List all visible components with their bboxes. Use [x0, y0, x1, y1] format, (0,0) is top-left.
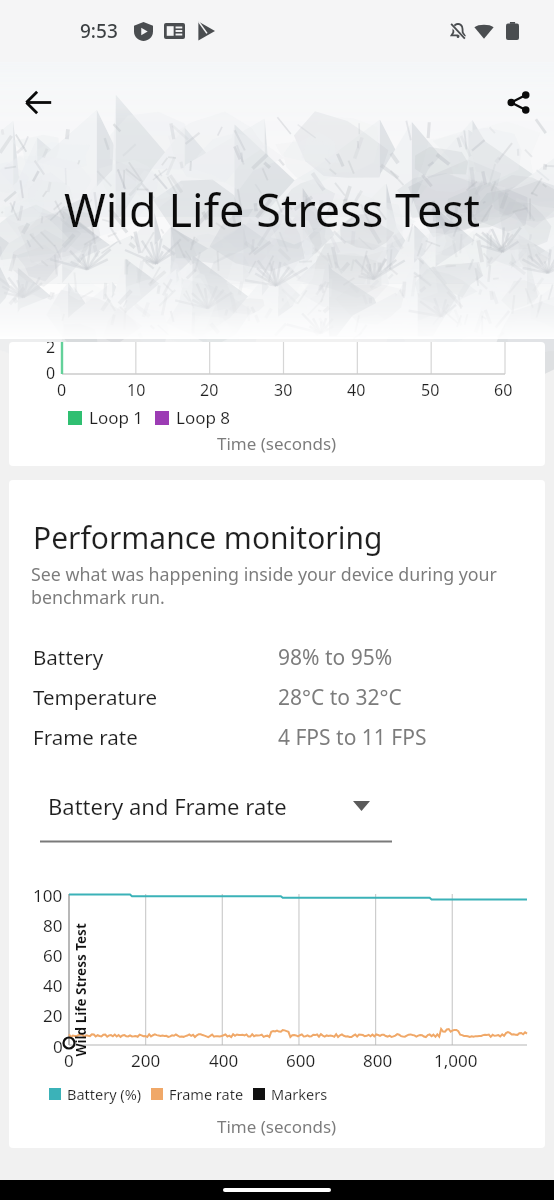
- button[interactable]: Share: [494, 78, 542, 126]
- staticText: Markers: [271, 1084, 328, 1104]
- staticText: 20: [43, 1004, 63, 1027]
- staticText: 2: [46, 342, 56, 358]
- staticText: 200: [131, 1049, 161, 1072]
- staticText: 20: [200, 379, 219, 401]
- staticText: 50: [421, 379, 440, 401]
- staticText: 0: [57, 379, 67, 401]
- staticText: 0: [64, 1049, 74, 1072]
- staticText: Time (seconds): [217, 1115, 337, 1138]
- staticText: Battery and Frame rate: [48, 791, 287, 821]
- staticText: Wild Life Stress Test: [71, 922, 89, 1056]
- staticText: 60: [43, 944, 63, 967]
- staticText: 10: [127, 379, 146, 401]
- staticText: Battery (%): [67, 1084, 142, 1104]
- staticText: 800: [363, 1049, 393, 1072]
- staticText: 28°C to 32°C: [278, 683, 402, 712]
- staticText: Temperature: [33, 683, 158, 711]
- button[interactable]: Back: [14, 78, 62, 126]
- staticText: Frame rate: [169, 1084, 244, 1104]
- staticText: 0: [53, 1035, 63, 1058]
- staticText: Wild Life Stress Test: [64, 179, 481, 240]
- staticText: 60: [494, 379, 513, 401]
- staticText: 100: [33, 884, 63, 907]
- button[interactable]: Battery and Frame rate: [31, 789, 401, 847]
- staticText: 4 FPS to 11 FPS: [278, 723, 427, 752]
- staticText: See what was happening inside your devic…: [31, 562, 521, 609]
- staticText: 0: [46, 362, 56, 384]
- staticText: Time (seconds): [217, 432, 337, 455]
- staticText: Frame rate: [33, 723, 138, 751]
- button[interactable]: Temperature: [9, 677, 545, 717]
- staticText: Performance monitoring: [33, 517, 383, 558]
- staticText: 9:53: [80, 18, 118, 44]
- staticText: Battery: [33, 643, 104, 671]
- staticText: 80: [43, 914, 63, 937]
- button[interactable]: Frame rate: [9, 717, 545, 757]
- staticText: 400: [209, 1049, 239, 1072]
- staticText: 30: [274, 379, 293, 401]
- staticText: Loop 1: [89, 406, 144, 429]
- button[interactable]: Battery: [9, 637, 545, 677]
- staticText: 40: [347, 379, 366, 401]
- staticText: 1,000: [434, 1049, 478, 1072]
- staticText: 600: [286, 1049, 316, 1072]
- staticText: 40: [43, 974, 63, 997]
- staticText: Loop 8: [176, 406, 231, 429]
- staticText: 98% to 95%: [278, 643, 393, 672]
